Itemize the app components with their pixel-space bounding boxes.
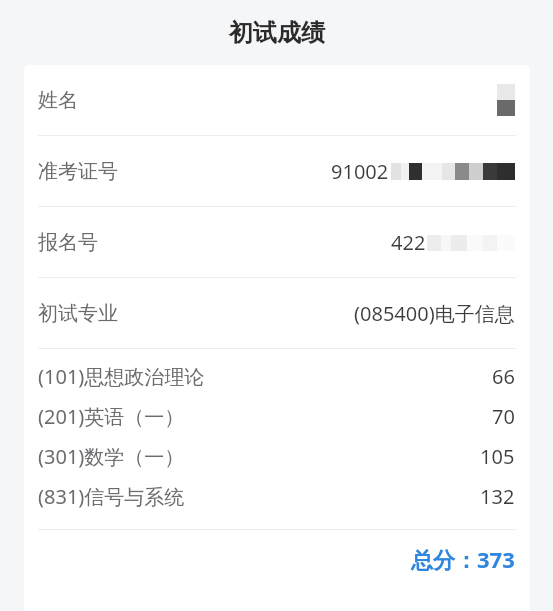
staticText: 422 bbox=[391, 229, 426, 256]
button[interactable]: (201)英语（一） bbox=[24, 396, 530, 436]
staticText: 初试专业 bbox=[38, 301, 118, 326]
staticText: (201)英语（一） bbox=[38, 403, 185, 430]
staticText: (101)思想政治理论 bbox=[38, 363, 205, 390]
button[interactable]: (301)数学（一） bbox=[24, 436, 530, 476]
staticText: 总分：373 bbox=[411, 544, 515, 574]
staticText: 姓名 bbox=[38, 88, 78, 113]
staticText: 132 bbox=[480, 483, 515, 510]
staticText: 105 bbox=[480, 443, 515, 470]
staticText: 初试成绩 bbox=[229, 18, 325, 48]
staticText: (831)信号与系统 bbox=[38, 483, 185, 510]
button[interactable]: (831)信号与系统 bbox=[24, 476, 530, 516]
staticText: 91002 bbox=[331, 158, 389, 185]
button[interactable]: (101)思想政治理论 bbox=[24, 356, 530, 396]
button[interactable]: 总分：373 bbox=[24, 530, 530, 588]
button[interactable]: 准考证号 bbox=[24, 136, 530, 206]
staticText: 66 bbox=[492, 363, 515, 390]
staticText: 70 bbox=[492, 403, 515, 430]
staticText: 准考证号 bbox=[38, 159, 118, 184]
staticText: (301)数学（一） bbox=[38, 443, 185, 470]
button[interactable]: 报名号 bbox=[24, 207, 530, 277]
button[interactable]: 姓名 bbox=[24, 65, 530, 135]
button[interactable]: 初试专业 bbox=[24, 278, 530, 348]
staticText: (085400)电子信息 bbox=[354, 300, 515, 327]
staticText: 报名号 bbox=[38, 230, 98, 255]
